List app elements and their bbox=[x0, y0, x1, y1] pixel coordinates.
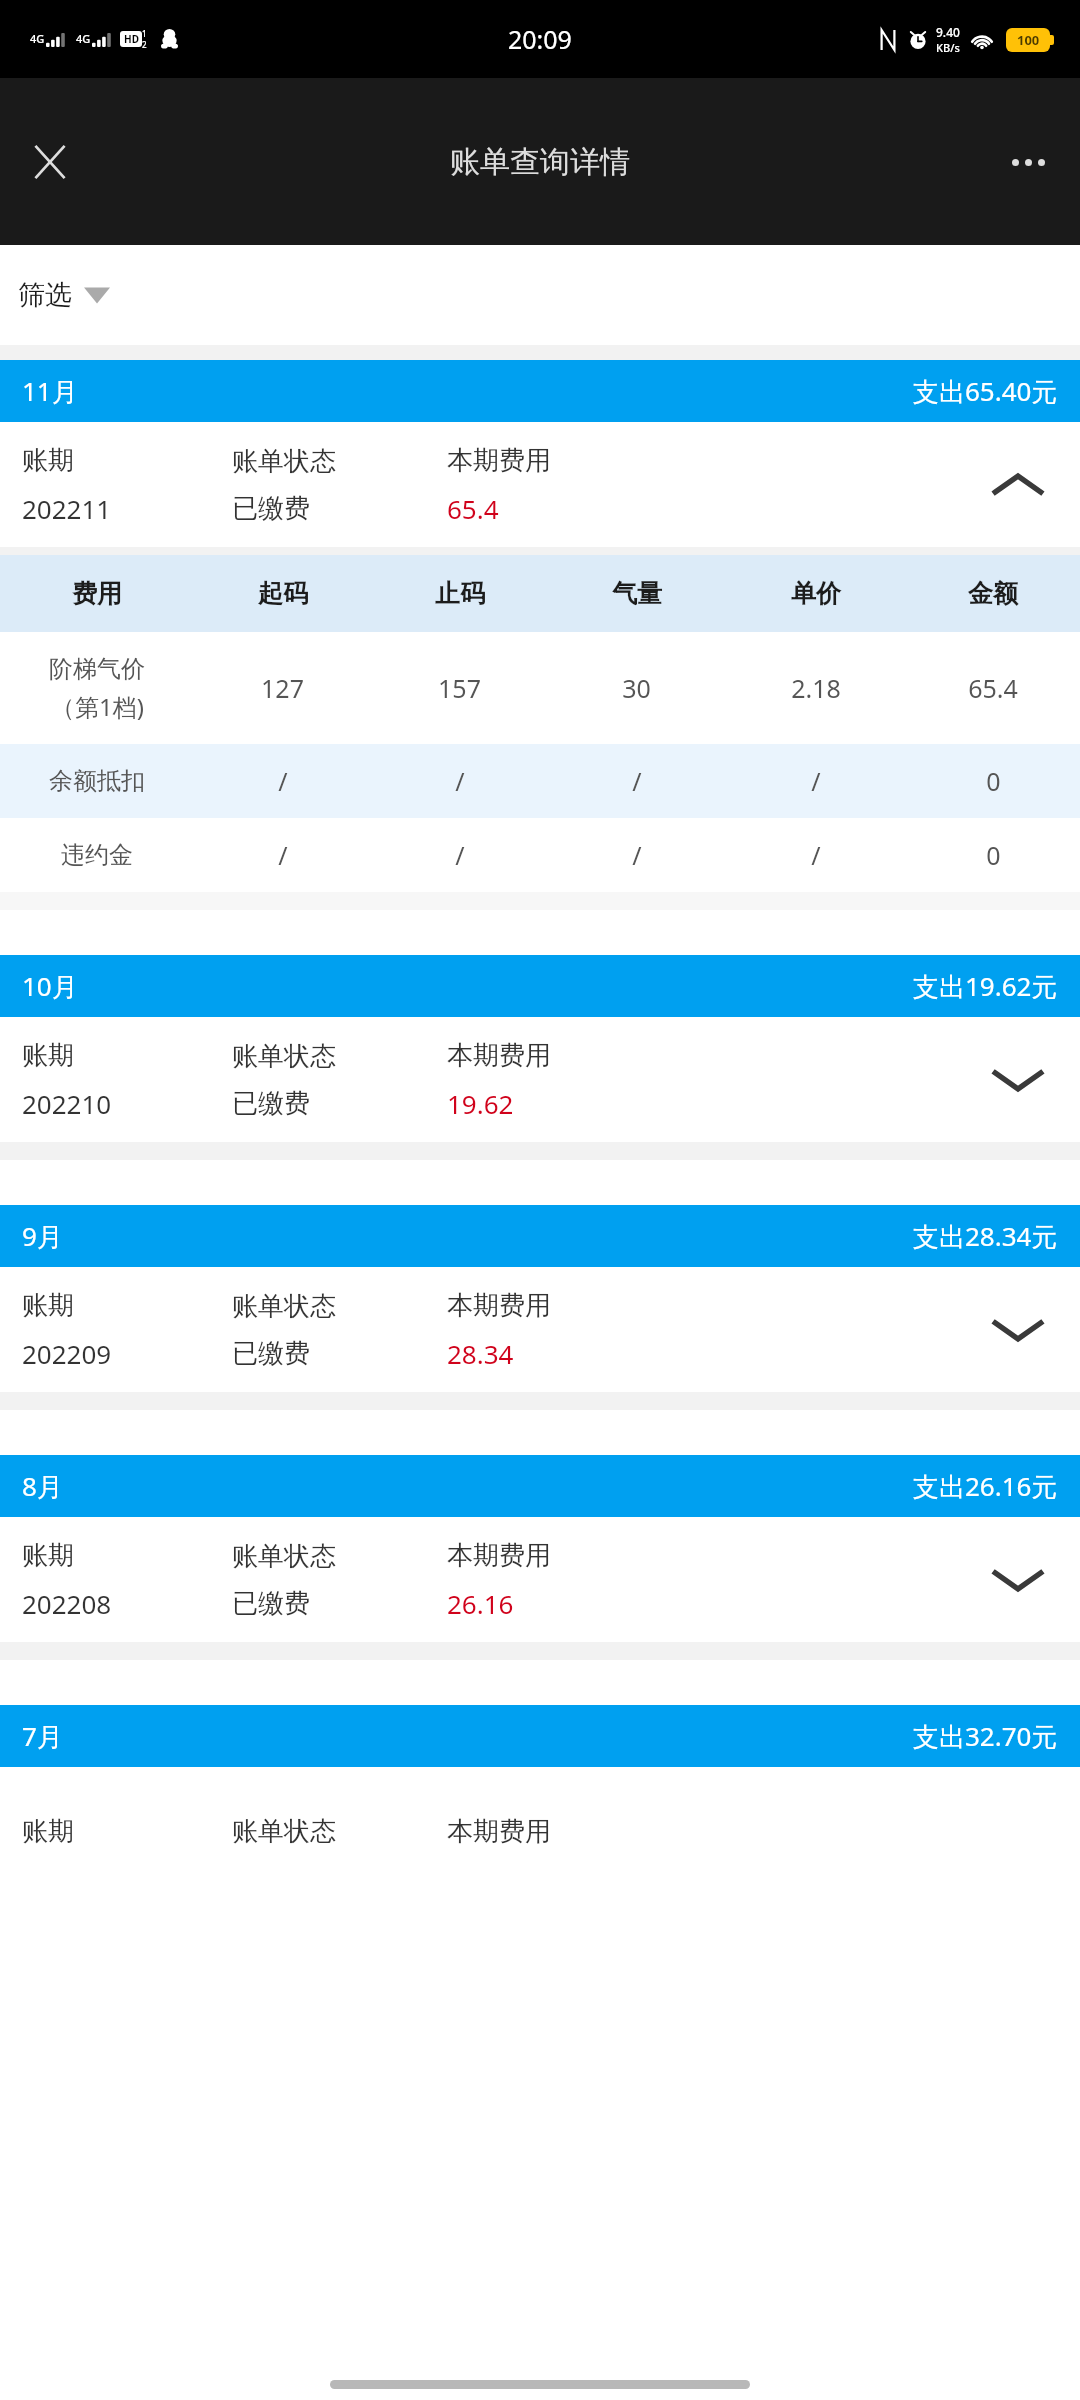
staticText: 11月 bbox=[22, 373, 78, 409]
staticText: 账单状态 bbox=[232, 1540, 336, 1573]
button[interactable]: 账期 bbox=[0, 1267, 1080, 1392]
staticText: 65.4 bbox=[447, 491, 499, 526]
staticText: 账单状态 bbox=[232, 1040, 336, 1073]
staticText: 本期费用 bbox=[447, 1289, 551, 1322]
staticText: 8月 bbox=[22, 1468, 63, 1504]
staticText: 费用 bbox=[72, 578, 122, 609]
staticText: 30 bbox=[622, 671, 651, 705]
staticText: 支出65.40元 bbox=[913, 373, 1058, 409]
staticText: 2 bbox=[142, 39, 147, 50]
staticText: 账单状态 bbox=[232, 445, 336, 478]
staticText: 本期费用 bbox=[447, 1039, 551, 1072]
staticText: 20:09 bbox=[508, 22, 572, 56]
staticText: 9.40 bbox=[936, 24, 960, 40]
staticText: （第1档) bbox=[51, 690, 144, 723]
staticText: KB/s bbox=[936, 40, 960, 55]
staticText: 起码 bbox=[258, 578, 308, 609]
button[interactable]: 8月 bbox=[0, 1455, 1080, 1517]
staticText: 0 bbox=[986, 764, 1001, 798]
staticText: 157 bbox=[438, 671, 481, 705]
button[interactable]: 11月 bbox=[0, 360, 1080, 422]
button[interactable]: More options bbox=[992, 126, 1064, 198]
staticText: 金额 bbox=[968, 578, 1018, 609]
staticText: 已缴费 bbox=[232, 1587, 310, 1620]
staticText: 支出26.16元 bbox=[913, 1468, 1058, 1504]
button[interactable]: Close bbox=[14, 126, 86, 198]
staticText: 违约金 bbox=[61, 840, 133, 870]
staticText: / bbox=[278, 838, 288, 872]
staticText: 账期 bbox=[22, 1289, 74, 1322]
staticText: 支出32.70元 bbox=[913, 1718, 1058, 1754]
staticText: / bbox=[278, 764, 288, 798]
staticText: 筛选 bbox=[18, 278, 72, 312]
staticText: 202211 bbox=[22, 491, 112, 526]
staticText: / bbox=[811, 838, 821, 872]
staticText: 本期费用 bbox=[447, 444, 551, 477]
staticText: 阶梯气价 bbox=[49, 654, 145, 684]
staticText: 26.16 bbox=[447, 1586, 514, 1621]
button[interactable]: 账期 bbox=[0, 1517, 1080, 1642]
staticText: 账单状态 bbox=[232, 1290, 336, 1323]
staticText: 100 bbox=[1017, 31, 1040, 49]
staticText: 0 bbox=[986, 838, 1001, 872]
staticText: 202209 bbox=[22, 1336, 112, 1371]
staticText: 账单查询详情 bbox=[450, 143, 630, 181]
staticText: 账期 bbox=[22, 1539, 74, 1572]
staticText: 余额抵扣 bbox=[49, 766, 145, 796]
staticText: 2.18 bbox=[791, 671, 841, 705]
staticText: / bbox=[455, 764, 465, 798]
staticText: 10月 bbox=[22, 968, 78, 1004]
button[interactable]: 筛选 bbox=[18, 278, 110, 312]
button[interactable]: 账期 bbox=[0, 422, 1080, 547]
staticText: 止码 bbox=[435, 578, 485, 609]
staticText: 本期费用 bbox=[447, 1815, 551, 1848]
staticText: 202208 bbox=[22, 1586, 112, 1621]
staticText: / bbox=[632, 764, 642, 798]
button[interactable]: 9月 bbox=[0, 1205, 1080, 1267]
button[interactable]: 10月 bbox=[0, 955, 1080, 1017]
button[interactable]: 7月 bbox=[0, 1705, 1080, 1767]
staticText: 账期 bbox=[22, 444, 74, 477]
staticText: 已缴费 bbox=[232, 1337, 310, 1370]
staticText: 7月 bbox=[22, 1718, 63, 1754]
staticText: 9月 bbox=[22, 1218, 63, 1254]
staticText: 202210 bbox=[22, 1086, 112, 1121]
button[interactable]: 账期 bbox=[0, 1017, 1080, 1142]
staticText: 4G bbox=[76, 31, 91, 46]
staticText: 账单状态 bbox=[232, 1815, 336, 1848]
staticText: 19.62 bbox=[447, 1086, 514, 1121]
staticText: 65.4 bbox=[968, 671, 1018, 705]
staticText: 支出28.34元 bbox=[913, 1218, 1058, 1254]
staticText: HD bbox=[124, 32, 139, 46]
staticText: 账期 bbox=[22, 1039, 74, 1072]
staticText: 4G bbox=[30, 31, 45, 46]
staticText: 已缴费 bbox=[232, 1087, 310, 1120]
staticText: 单价 bbox=[791, 578, 841, 609]
staticText: 本期费用 bbox=[447, 1539, 551, 1572]
staticText: / bbox=[632, 838, 642, 872]
staticText: 支出19.62元 bbox=[913, 968, 1058, 1004]
staticText: 气量 bbox=[612, 578, 662, 609]
staticText: 已缴费 bbox=[232, 492, 310, 525]
staticText: 127 bbox=[261, 671, 304, 705]
staticText: 1 bbox=[142, 28, 147, 39]
staticText: 账期 bbox=[22, 1815, 74, 1848]
staticText: / bbox=[455, 838, 465, 872]
staticText: / bbox=[811, 764, 821, 798]
staticText: 28.34 bbox=[447, 1336, 514, 1371]
